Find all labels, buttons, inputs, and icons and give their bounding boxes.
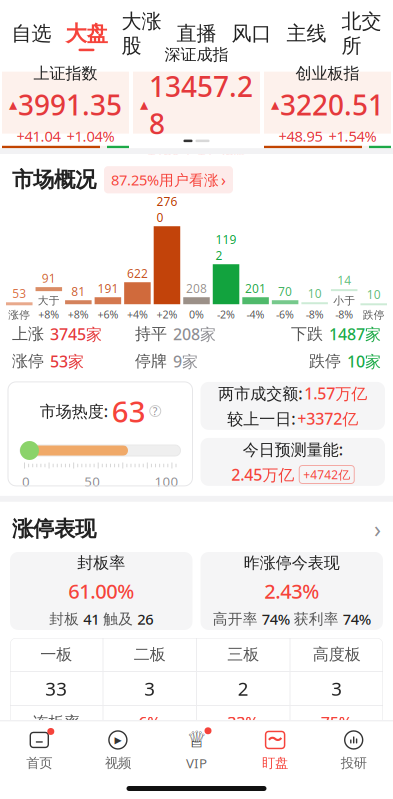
staticText: 622 [127,265,148,281]
staticText: 上证指数 [33,63,97,83]
staticText: 创业板指 [295,63,359,83]
staticText: 市场概况 [12,167,96,193]
button[interactable]: 大盘 [59,11,114,60]
staticText: 9家 [173,351,198,372]
staticText: -2% [217,307,235,321]
staticText: 14 [337,272,351,288]
staticText: 2760 [156,193,177,225]
button[interactable]: 自选 [4,12,59,59]
button[interactable]: 市场热度说明 [150,405,161,416]
staticText: 3 [331,676,342,701]
staticText: 大盘 [65,20,107,47]
staticText: 上涨 [12,324,44,344]
staticText: 封板 [49,610,79,628]
staticText: +1.54% [328,126,376,146]
staticText: 53 [12,285,26,301]
staticText: 主线 [286,21,326,46]
staticText: +168.1 [147,145,191,164]
staticText: 2 [238,676,249,701]
button[interactable]: ▶ [79,728,157,771]
button[interactable]: ♕ [157,727,236,772]
staticText: 74% [262,609,290,629]
staticText: 盯盘 [262,755,288,771]
staticText: 201 [245,280,266,296]
staticText: VIP [186,754,207,772]
staticText: ▲ [140,99,148,111]
staticText: › [221,169,226,190]
staticText: 13457.28 [149,67,253,142]
staticText: 停牌 [135,351,167,371]
staticText: 75% [321,712,353,733]
button[interactable]: 投研 [314,728,393,771]
staticText: 三板 [227,645,259,664]
button[interactable]: 深证成指 [133,72,260,134]
staticText: 33% [227,712,259,733]
button[interactable]: 主线 [279,12,334,59]
staticText: +2% [156,307,177,321]
staticText: 100 [154,472,178,490]
staticText: 0 [22,472,30,490]
staticText: +6% [97,307,118,321]
staticText: +8% [68,307,89,321]
staticText: 连板率 [32,713,80,732]
staticText: 跌停 [363,308,385,321]
staticText: 两市成交额: [218,383,302,404]
button[interactable]: 〜 [236,728,314,771]
staticText: 10 [367,286,381,302]
staticText: +41.04 [16,126,60,146]
staticText: 3991.35 [18,86,122,123]
button[interactable]: 风口 [224,12,279,59]
staticText: 投研 [341,755,367,771]
staticText: -8% [306,307,324,321]
staticText: 10家 [347,351,381,372]
staticText: 直播 [176,21,216,46]
staticText: 首页 [26,755,52,771]
staticText: ▲ [9,99,17,111]
staticText: 触及 [103,610,133,628]
staticText: 2.43% [264,578,319,604]
staticText: +48.95 [278,126,322,146]
staticText: -4% [247,307,265,321]
staticText: ? [153,404,158,418]
button[interactable]: 首页 [0,728,79,771]
staticText: 北交所 [341,9,381,58]
button[interactable]: 直播 [169,12,224,59]
staticText: 3745家 [50,323,102,345]
staticText: 大于 [38,294,60,307]
button[interactable]: 涨停表现 [0,502,393,552]
staticText: ▲ [271,99,279,111]
staticText: 10 [308,285,322,301]
button[interactable]: 创业板指 [264,72,391,134]
staticText: 封板率 [77,553,125,573]
staticText: +4% [127,307,148,321]
staticText: 跌停 [309,351,341,371]
staticText: 涨停 [12,351,44,371]
staticText: 昨涨停今表现 [244,553,340,573]
staticText: 1192 [215,231,236,263]
staticText: 70 [278,283,292,299]
staticText: 高度板 [313,645,361,664]
staticText: 26 [137,609,153,629]
staticText: 一板 [40,645,72,664]
staticText: 81 [71,283,85,299]
staticText: 获利率 [294,610,339,628]
staticText: 74% [343,609,371,629]
staticText: 50 [84,472,100,490]
staticText: +8% [38,307,59,321]
staticText: 涨停 [8,308,30,321]
staticText: 0% [189,307,204,321]
staticText: 高开率 [213,610,258,628]
button[interactable]: 北交所 [334,0,389,72]
staticText: +3372亿 [297,408,358,429]
staticText: 3220.51 [280,86,384,123]
button[interactable]: 大涨股 [114,0,169,72]
staticText: 涨停表现 [12,516,96,542]
button[interactable]: 上证指数 [2,72,129,134]
staticText: +1.04% [66,126,114,146]
staticText: 3 [144,676,155,701]
button[interactable]: 87.25%用户看涨 [104,166,233,193]
staticText: 自选 [11,21,51,46]
staticText: 53家 [50,351,84,372]
staticText: 1.57万亿 [304,383,367,404]
staticText: 87.25%用户看涨 [111,170,219,189]
